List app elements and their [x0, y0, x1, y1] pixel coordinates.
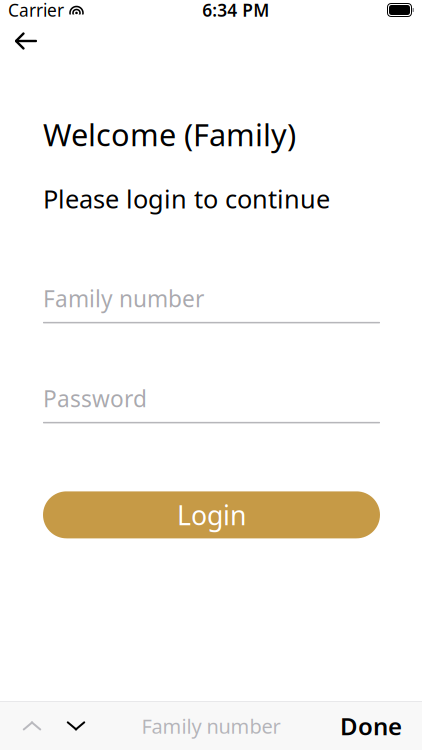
button[interactable]: Previous field [10, 704, 54, 748]
button[interactable]: Login [43, 491, 380, 538]
button[interactable]: Back [4, 21, 48, 61]
staticText: Please login to continue [43, 182, 330, 215]
staticText: Family number [43, 283, 204, 313]
staticText: Family number [141, 713, 280, 739]
staticText: 6:34 PM [202, 0, 269, 21]
staticText: Welcome (Family) [43, 114, 296, 155]
button[interactable]: Next field [54, 704, 98, 748]
button[interactable]: Done [330, 704, 412, 748]
staticText: Password [43, 383, 147, 413]
staticText: Carrier [8, 0, 64, 21]
staticText: Login [177, 497, 246, 533]
staticText: Done [340, 710, 402, 742]
